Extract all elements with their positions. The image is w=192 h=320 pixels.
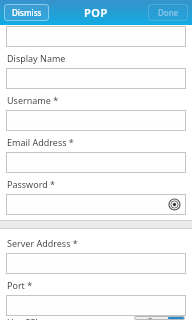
button[interactable]: Dismiss bbox=[4, 4, 49, 21]
staticText: Dismiss bbox=[12, 7, 42, 18]
staticText: Use SSL bbox=[7, 316, 40, 320]
button[interactable]: Use SSL bbox=[0, 316, 192, 320]
staticText: Username * bbox=[7, 94, 59, 106]
staticText: Done bbox=[158, 7, 179, 18]
button[interactable]: Done bbox=[148, 4, 188, 21]
button[interactable] bbox=[6, 295, 186, 316]
staticText: Server Address * bbox=[7, 237, 78, 249]
staticText: Password * bbox=[7, 178, 56, 190]
button[interactable] bbox=[6, 26, 186, 47]
staticText: POP bbox=[84, 5, 108, 20]
staticText: On bbox=[147, 316, 159, 320]
staticText: Display Name bbox=[7, 52, 66, 64]
button[interactable]: Show password bbox=[168, 198, 181, 211]
button[interactable] bbox=[6, 152, 186, 173]
staticText: Email Address * bbox=[7, 136, 74, 148]
button[interactable] bbox=[6, 68, 186, 89]
button[interactable] bbox=[6, 253, 186, 274]
button[interactable] bbox=[6, 110, 186, 131]
staticText: Port * bbox=[7, 279, 33, 291]
button[interactable]: Show password bbox=[6, 194, 186, 215]
button[interactable]: Use SSL toggle, On bbox=[134, 316, 185, 320]
